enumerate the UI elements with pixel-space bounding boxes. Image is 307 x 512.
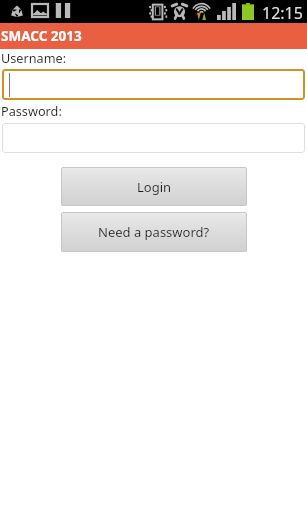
staticText: Need a password? <box>98 223 210 241</box>
staticText: Password: <box>1 102 62 119</box>
staticText: SMACC 2013 <box>1 27 82 45</box>
staticText: Login <box>137 178 172 196</box>
staticText: Username: <box>1 49 67 66</box>
button[interactable]: Username input field <box>2 69 305 100</box>
button[interactable]: Password input field <box>2 123 305 153</box>
button[interactable]: Need a password? <box>61 212 247 252</box>
staticText: 12:15 <box>262 2 303 24</box>
button[interactable]: Login <box>61 167 247 206</box>
